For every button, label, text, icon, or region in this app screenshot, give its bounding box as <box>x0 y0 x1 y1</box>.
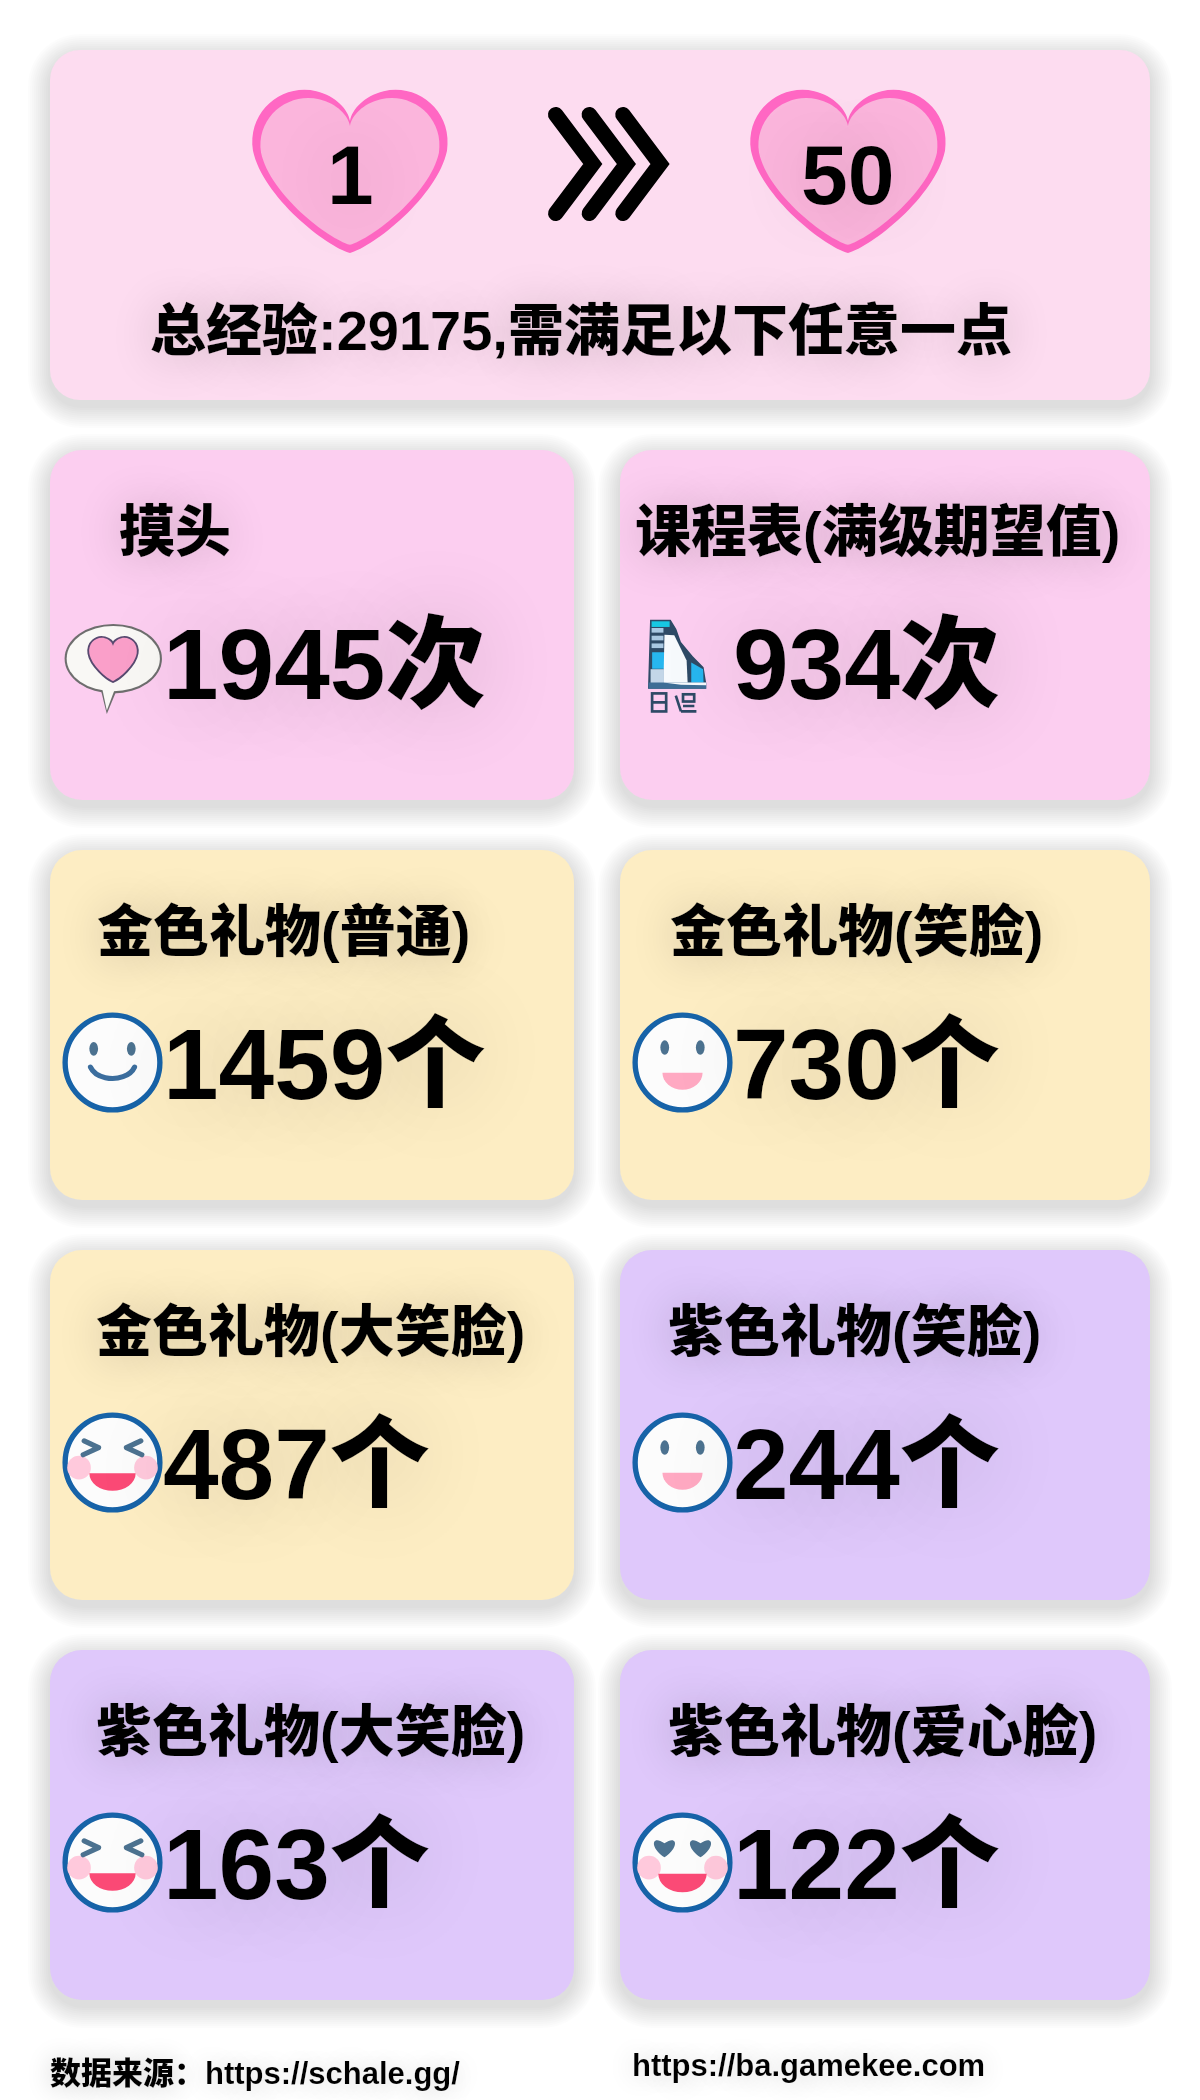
staticText: 1 <box>327 128 374 222</box>
staticText: 金色礼物(大笑脸) <box>96 1286 526 1367</box>
staticText: 934次 <box>733 583 1000 728</box>
staticText: 课程表(满级期望值) <box>635 486 1121 567</box>
staticText: 122个 <box>733 1783 1000 1928</box>
button[interactable]: 紫色礼物(大笑脸) <box>50 1650 574 2000</box>
button[interactable]: 课程表(满级期望值) <box>620 450 1150 800</box>
staticText: 紫色礼物(笑脸) <box>668 1286 1042 1367</box>
staticText: 摸头 <box>119 486 231 567</box>
staticText: 紫色礼物(爱心脸) <box>668 1686 1098 1767</box>
staticText: 金色礼物(普通) <box>97 886 471 967</box>
button[interactable]: 紫色礼物(笑脸) <box>620 1250 1150 1600</box>
staticText: 730个 <box>733 983 1000 1128</box>
button[interactable]: 紫色礼物(爱心脸) <box>620 1650 1150 2000</box>
button[interactable]: 金色礼物(普通) <box>50 850 574 1200</box>
staticText: 487个 <box>163 1383 430 1528</box>
staticText: 紫色礼物(大笑脸) <box>96 1686 526 1767</box>
button[interactable]: 金色礼物(大笑脸) <box>50 1250 574 1600</box>
staticText: 1459个 <box>163 983 486 1128</box>
staticText: 数据来源：https://schale.gg/ <box>50 2048 460 2093</box>
staticText: 1945次 <box>163 583 486 728</box>
staticText: 163个 <box>163 1783 430 1928</box>
staticText: 金色礼物(笑脸) <box>670 886 1044 967</box>
staticText: 50 <box>801 128 895 222</box>
staticText: 总经验:29175,需满足以下任意一点 <box>150 285 1012 366</box>
staticText: 244个 <box>733 1383 1000 1528</box>
staticText: https://ba.gamekee.com <box>632 2048 986 2083</box>
button[interactable]: 金色礼物(笑脸) <box>620 850 1150 1200</box>
button[interactable]: 摸头 <box>50 450 574 800</box>
